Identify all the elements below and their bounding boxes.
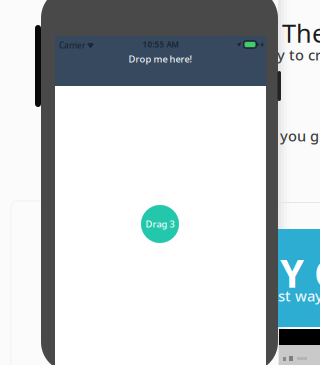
staticText: Y G bbox=[280, 247, 320, 298]
staticText: Carrier bbox=[59, 40, 85, 51]
staticText: y to create bbox=[277, 45, 320, 64]
staticText: st way t bbox=[278, 286, 320, 305]
staticText: you giffin bbox=[280, 126, 320, 145]
staticText: Drop me here! bbox=[128, 53, 192, 65]
staticText: Drag 3 bbox=[145, 218, 174, 230]
staticText: 10:55 AM bbox=[142, 39, 178, 50]
button[interactable]: Drag 3 bbox=[141, 205, 179, 243]
staticText: The G bbox=[282, 16, 320, 50]
